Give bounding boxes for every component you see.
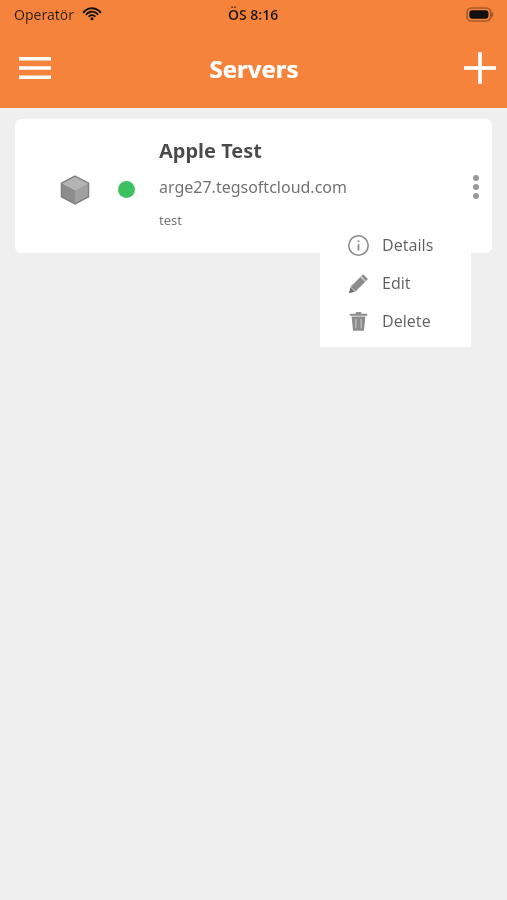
staticText: Apple Test	[159, 137, 263, 164]
staticText: ÖS 8:16	[228, 5, 279, 24]
button[interactable]: Edit	[320, 264, 471, 302]
staticText: Delete	[382, 310, 431, 332]
button[interactable]: Delete	[320, 302, 471, 340]
button[interactable]: Apple Test	[15, 119, 492, 253]
staticText: Details	[382, 234, 434, 256]
staticText: arge27.tegsoftcloud.com	[159, 176, 347, 198]
staticText: test	[159, 211, 182, 229]
button[interactable]: Add server	[457, 45, 503, 91]
staticText: Edit	[382, 272, 411, 294]
button[interactable]: Details	[320, 226, 471, 264]
button[interactable]: More options	[455, 166, 492, 208]
staticText: Servers	[209, 52, 299, 85]
staticText: Operatör	[14, 5, 75, 24]
button[interactable]: Menu	[12, 45, 58, 91]
